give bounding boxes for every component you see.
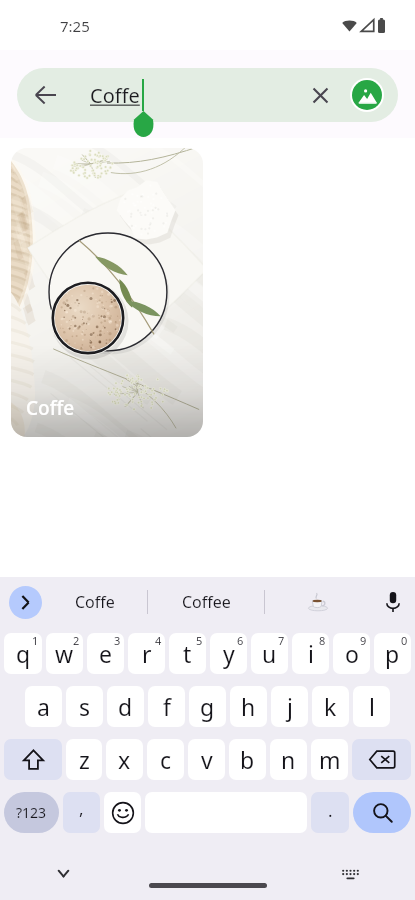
button[interactable]: Hide keyboard xyxy=(58,870,90,900)
button[interactable]: h xyxy=(230,686,267,727)
button[interactable]: v xyxy=(188,739,225,780)
button[interactable]: u xyxy=(251,633,288,674)
button[interactable]: m xyxy=(311,739,348,780)
staticText: c xyxy=(160,744,172,775)
button[interactable]: Search xyxy=(353,792,411,833)
button[interactable]: . xyxy=(311,792,349,833)
staticText: 2 xyxy=(73,633,80,648)
button[interactable]: Emoji xyxy=(104,792,141,833)
staticText: Coffe xyxy=(90,82,140,109)
button[interactable]: z xyxy=(66,739,102,780)
button[interactable]: e xyxy=(87,633,124,674)
button[interactable]: j xyxy=(271,686,308,727)
staticText: w xyxy=(55,638,74,669)
staticText: z xyxy=(79,744,90,775)
button[interactable]: n xyxy=(270,739,307,780)
staticText: b xyxy=(240,744,255,775)
button[interactable]: p xyxy=(374,633,411,674)
staticText: l xyxy=(369,691,375,722)
staticText: g xyxy=(200,691,215,722)
button[interactable]: , xyxy=(63,792,100,833)
staticText: a xyxy=(37,691,50,722)
staticText: o xyxy=(345,638,359,669)
staticText: k xyxy=(324,691,337,722)
staticText: n xyxy=(281,744,296,775)
button[interactable]: y xyxy=(210,633,247,674)
button[interactable]: b xyxy=(229,739,266,780)
staticText: , xyxy=(79,797,84,820)
staticText: v xyxy=(201,744,213,775)
staticText: q xyxy=(16,638,31,669)
staticText: i xyxy=(308,638,314,669)
button[interactable]: d xyxy=(107,686,144,727)
staticText: . xyxy=(328,799,333,822)
button[interactable]: q xyxy=(4,633,42,674)
button[interactable]: x xyxy=(106,739,143,780)
staticText: e xyxy=(99,638,112,669)
button[interactable]: Coffe xyxy=(42,577,147,627)
staticText: j xyxy=(287,691,293,722)
button[interactable]: s xyxy=(66,686,103,727)
staticText: m xyxy=(319,744,341,775)
button[interactable]: Coffe xyxy=(11,148,203,437)
staticText: 5 xyxy=(196,633,203,648)
staticText: p xyxy=(385,638,400,669)
staticText: 7:25 xyxy=(60,16,90,36)
button[interactable]: l xyxy=(353,686,390,727)
staticText: Coffe xyxy=(75,591,115,613)
staticText: ?123 xyxy=(16,803,47,822)
button[interactable]: w xyxy=(46,633,83,674)
button[interactable]: f xyxy=(148,686,185,727)
staticText: 9 xyxy=(360,633,367,648)
staticText: h xyxy=(241,691,256,722)
staticText: x xyxy=(118,744,131,775)
staticText: 3 xyxy=(114,633,121,648)
button[interactable]: Voice input xyxy=(371,577,415,627)
staticText: Coffe xyxy=(26,395,75,421)
staticText: y xyxy=(223,638,235,669)
button[interactable]: Expand suggestions xyxy=(9,586,42,619)
staticText: 1 xyxy=(32,633,39,648)
staticText: s xyxy=(79,691,91,722)
staticText: r xyxy=(142,638,152,669)
staticText: 4 xyxy=(155,633,162,648)
staticText: t xyxy=(183,638,192,669)
staticText: 8 xyxy=(319,633,326,648)
staticText: 0 xyxy=(401,633,408,648)
button[interactable]: k xyxy=(312,686,349,727)
button[interactable]: Shift xyxy=(4,739,62,780)
button[interactable]: ?123 xyxy=(4,792,59,833)
staticText: 7 xyxy=(278,633,285,648)
staticText: d xyxy=(118,691,133,722)
button[interactable]: r xyxy=(128,633,165,674)
button[interactable]: Search by image xyxy=(350,78,384,112)
button[interactable]: g xyxy=(189,686,226,727)
button[interactable]: Backspace xyxy=(352,739,411,780)
staticText: f xyxy=(163,691,171,722)
button[interactable]: o xyxy=(333,633,370,674)
button[interactable]: Coffee xyxy=(148,577,264,627)
button[interactable]: t xyxy=(169,633,206,674)
button[interactable]: a xyxy=(25,686,62,727)
button[interactable]: Switch keyboard xyxy=(342,869,359,880)
button[interactable]: i xyxy=(292,633,329,674)
button[interactable]: Clear xyxy=(298,73,342,117)
button[interactable]: c xyxy=(147,739,184,780)
staticText: u xyxy=(262,638,277,669)
staticText: Coffee xyxy=(182,591,231,613)
staticText: 6 xyxy=(237,633,244,648)
button[interactable]: Coffee emoji xyxy=(265,577,371,627)
button[interactable]: Back xyxy=(23,73,67,117)
